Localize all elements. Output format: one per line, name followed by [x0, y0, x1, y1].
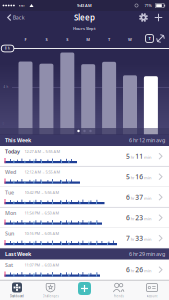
staticText: S [66, 37, 68, 42]
staticText: hr [131, 175, 135, 180]
staticText: 33 [135, 234, 143, 243]
staticText: 6 hr 29 min avg [129, 250, 165, 258]
button[interactable]: Account [135, 280, 168, 300]
staticText: 5 [126, 172, 130, 181]
staticText: hr [131, 216, 135, 221]
staticText: 6 [126, 213, 130, 222]
button[interactable]: Back [3, 11, 29, 24]
staticText: T [108, 37, 110, 42]
staticText: Wed [5, 168, 16, 176]
staticText: 9:43 AM [77, 3, 92, 8]
button[interactable]: Challenges [34, 280, 67, 300]
staticText: 8 h [5, 47, 10, 50]
staticText: 11 [135, 152, 143, 161]
staticText: 11:07 PM – 6:03 AM [24, 262, 59, 268]
staticText: Today [5, 148, 20, 155]
staticText: W [128, 37, 132, 42]
button[interactable]: Mon [0, 207, 169, 228]
staticText: min [144, 268, 151, 273]
staticText: hr [131, 155, 135, 160]
staticText: AT&T [18, 4, 24, 7]
staticText: 7 [126, 234, 130, 243]
staticText: min [144, 237, 151, 242]
button[interactable]: Sat [0, 259, 169, 280]
button[interactable]: Add sleep log [155, 14, 162, 21]
staticText: 10:42 PM – 5:56 AM [24, 190, 59, 195]
button[interactable]: Tue [0, 187, 169, 207]
staticText: Tue [5, 189, 14, 196]
staticText: This Week [5, 137, 31, 144]
staticText: Sleep [74, 12, 95, 23]
staticText: Sun [5, 230, 14, 237]
button[interactable]: Dashboard [0, 280, 33, 300]
button[interactable]: Sun [0, 228, 169, 248]
staticText: 37 [135, 193, 143, 202]
staticText: min [144, 155, 151, 160]
staticText: 6 [126, 193, 130, 202]
staticText: hr [131, 196, 135, 201]
staticText: Challenges [42, 294, 58, 298]
staticText: min [144, 196, 151, 201]
staticText: T [148, 36, 150, 41]
staticText: Back [13, 14, 25, 21]
staticText: F [24, 37, 26, 42]
staticText: 16 [135, 172, 143, 181]
staticText: Friends [113, 294, 123, 298]
button[interactable]: Today [0, 146, 169, 166]
staticText: 6 [126, 265, 130, 274]
staticText: Mon [5, 209, 16, 217]
staticText: Sat [5, 261, 13, 269]
staticText: S [45, 37, 47, 42]
staticText: 4 h [3, 85, 8, 89]
staticText: hr [131, 237, 135, 242]
staticText: 11:54 PM – 6:50 AM [24, 210, 59, 216]
staticText: Hours Slept [73, 26, 96, 31]
staticText: Account [146, 294, 157, 298]
staticText: 12:27 AM – 5:55 AM [24, 149, 60, 154]
staticText: Dashboard [10, 294, 24, 298]
staticText: M [86, 37, 90, 42]
button[interactable]: Wed [0, 166, 169, 187]
button[interactable]: Log activity [78, 282, 91, 295]
button[interactable]: Settings [139, 13, 148, 22]
button[interactable]: Friends [102, 280, 135, 300]
staticText: min [144, 175, 151, 180]
staticText: hr [131, 268, 135, 273]
staticText: 26 [135, 265, 143, 274]
staticText: min [144, 216, 151, 221]
staticText: 10:16 PM – 6:05 AM [24, 231, 59, 236]
staticText: 5 [126, 152, 130, 161]
button[interactable]: Expand chart [156, 34, 164, 42]
staticText: 12:12 AM – 5:55 AM [24, 169, 60, 175]
staticText: Last Week [5, 250, 31, 258]
staticText: 23 [135, 213, 143, 222]
staticText: 6 hr 12 min avg [129, 137, 165, 144]
staticText: 71% [144, 3, 151, 8]
